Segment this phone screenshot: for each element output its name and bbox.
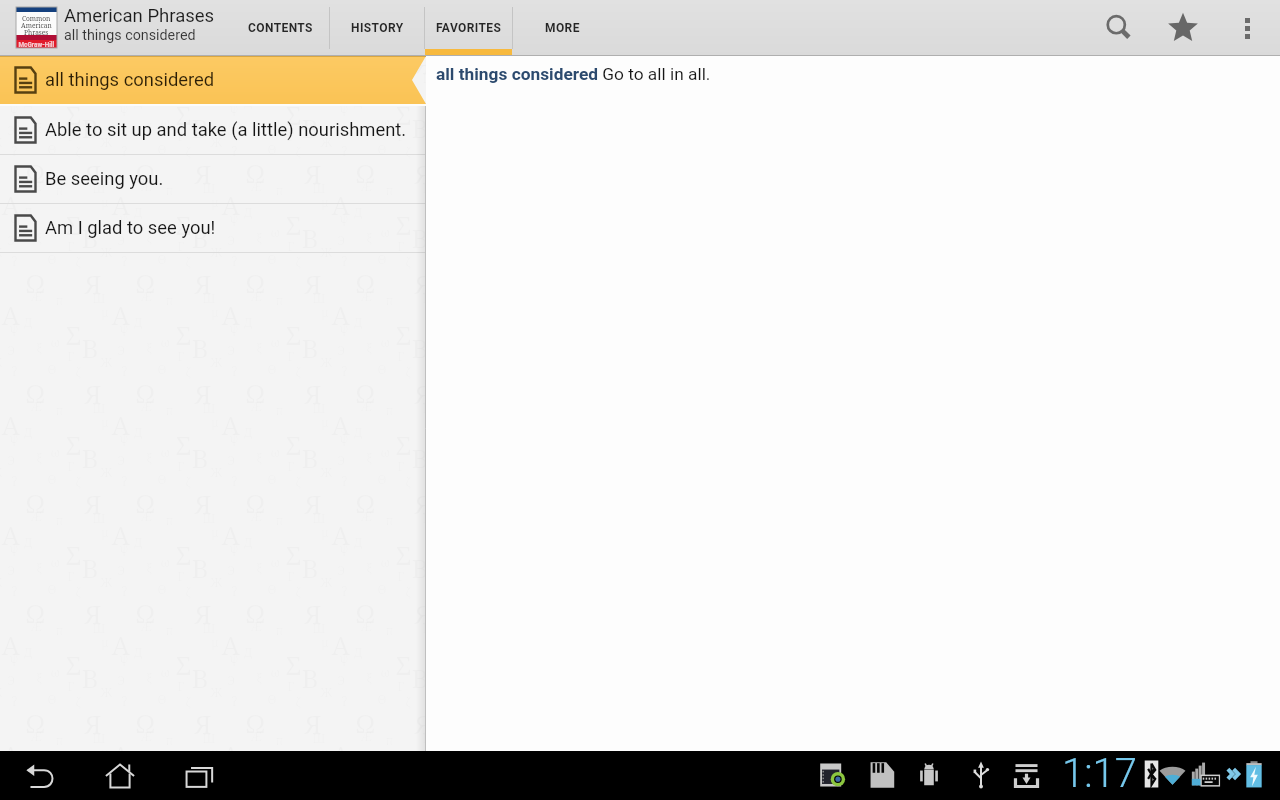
staticText: CONTENTS	[248, 21, 313, 35]
staticText: all things considered Go to all in all.	[436, 64, 711, 84]
button[interactable]: More options	[1215, 0, 1280, 56]
staticText: Able to sit up and take (a little) nouri…	[45, 119, 407, 141]
button[interactable]: Favorites	[1151, 0, 1215, 56]
button[interactable]: Recent apps	[168, 751, 232, 800]
staticText: MORE	[545, 21, 580, 35]
button[interactable]: MORE	[513, 0, 612, 56]
staticText: FAVORITES	[436, 21, 502, 35]
staticText: HISTORY	[351, 21, 404, 35]
staticText: Be seeing you.	[45, 168, 164, 190]
staticText: 1:17	[1062, 750, 1137, 797]
button[interactable]: Home	[88, 751, 152, 800]
button[interactable]: Back	[8, 751, 72, 800]
button[interactable]: FAVORITES	[425, 0, 512, 56]
button[interactable]: Able to sit up and take (a little) nouri…	[0, 106, 426, 154]
button[interactable]: CONTENTS	[232, 0, 329, 56]
staticText: all things considered	[45, 69, 215, 91]
staticText: Am I glad to see you!	[45, 217, 216, 239]
button[interactable]: all things considered	[0, 56, 426, 104]
button[interactable]: Be seeing you.	[0, 155, 426, 203]
staticText: all things considered	[64, 27, 196, 44]
button[interactable]: Am I glad to see you!	[0, 204, 426, 252]
button[interactable]: HISTORY	[330, 0, 424, 56]
button[interactable]: Search	[1087, 0, 1151, 56]
staticText: American Phrases	[64, 5, 215, 27]
